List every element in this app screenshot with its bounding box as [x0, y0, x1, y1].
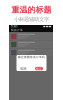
button[interactable]: 确定 [35, 67, 43, 70]
staticText: 9:41 [11, 25, 18, 28]
staticText: 确定要删除该订单吗 [18, 56, 45, 59]
staticText: 重温的标题 [11, 5, 51, 15]
staticText: 小标题辅助文字 [14, 16, 49, 22]
staticText: 我的订单 [11, 28, 23, 32]
staticText: 取消 [20, 67, 26, 70]
button[interactable]: 取消 [20, 67, 27, 70]
staticText: 确定 [36, 67, 42, 70]
